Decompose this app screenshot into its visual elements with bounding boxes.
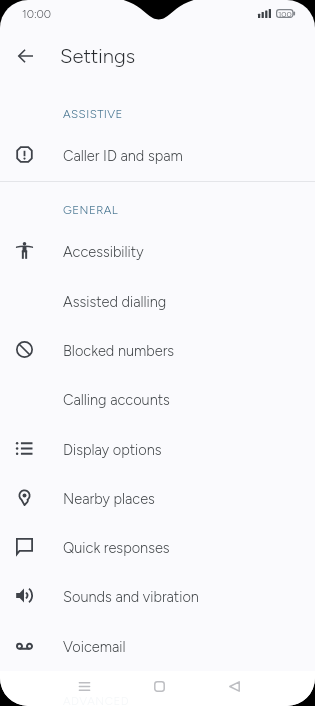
- staticText: Accessibility: [63, 243, 144, 260]
- button[interactable]: Back: [217, 671, 251, 706]
- button[interactable]: Caller ID and spam: [0, 130, 315, 179]
- button[interactable]: ADVANCED: [0, 685, 315, 706]
- staticText: Voicemail: [63, 638, 126, 655]
- button[interactable]: Assisted dialling: [0, 276, 315, 325]
- staticText: Caller ID and spam: [63, 147, 183, 164]
- button[interactable]: Home: [142, 671, 176, 706]
- button[interactable]: Display options: [0, 424, 315, 473]
- staticText: Display options: [63, 441, 162, 458]
- staticText: Quick responses: [63, 539, 170, 556]
- button[interactable]: Voicemail: [0, 621, 315, 670]
- staticText: Assisted dialling: [63, 293, 167, 310]
- button[interactable]: Blocked numbers: [0, 325, 315, 374]
- button[interactable]: ASSISTIVE: [0, 98, 315, 130]
- staticText: ASSISTIVE: [63, 107, 123, 121]
- staticText: Sounds and vibration: [63, 588, 199, 605]
- button[interactable]: Calling accounts: [0, 374, 315, 423]
- button[interactable]: Accessibility: [0, 226, 315, 275]
- staticText: Settings: [60, 44, 136, 68]
- button[interactable]: Recent apps: [67, 671, 101, 706]
- staticText: Nearby places: [63, 490, 155, 507]
- staticText: 10:00: [22, 7, 52, 21]
- button[interactable]: Nearby places: [0, 473, 315, 522]
- staticText: 100: [278, 9, 292, 18]
- staticText: Blocked numbers: [63, 342, 175, 359]
- staticText: Calling accounts: [63, 391, 170, 408]
- button[interactable]: Sounds and vibration: [0, 571, 315, 620]
- staticText: GENERAL: [63, 203, 119, 217]
- button[interactable]: Quick responses: [0, 522, 315, 571]
- button[interactable]: GENERAL: [0, 194, 315, 226]
- button[interactable]: Back: [3, 34, 47, 78]
